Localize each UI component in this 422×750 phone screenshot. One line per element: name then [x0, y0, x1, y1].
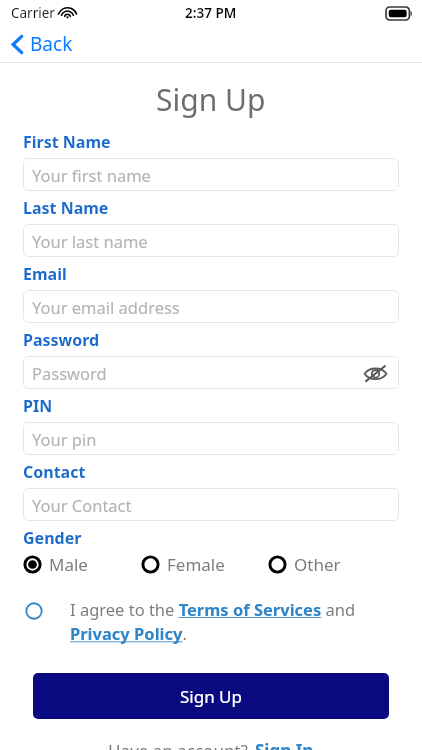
button[interactable]: Password: [23, 356, 399, 389]
staticText: Male: [49, 553, 88, 576]
staticText: Your Contact: [32, 494, 132, 516]
staticText: Your pin: [32, 428, 97, 450]
button[interactable]: Your first name: [23, 158, 399, 191]
staticText: Sign Up: [156, 79, 266, 120]
staticText: 2:37 PM: [185, 4, 237, 22]
staticText: I agree to the Terms of Services and Pri…: [70, 598, 382, 645]
staticText: Email: [23, 263, 67, 285]
staticText: Other: [294, 553, 341, 576]
staticText: Password: [32, 362, 107, 384]
button[interactable]: Agree to terms: [25, 598, 382, 645]
staticText: First Name: [23, 131, 111, 153]
button[interactable]: Your pin: [23, 422, 399, 455]
button[interactable]: Your last name: [23, 224, 399, 257]
staticText: Have an account?: [108, 739, 248, 750]
staticText: Your email address: [32, 296, 180, 318]
staticText: Sign Up: [180, 685, 242, 708]
button[interactable]: Show password: [362, 363, 388, 383]
staticText: PIN: [23, 395, 53, 417]
button[interactable]: Your email address: [23, 290, 399, 323]
button[interactable]: Your Contact: [23, 488, 399, 521]
staticText: Contact: [23, 461, 86, 483]
button[interactable]: Other: [268, 553, 341, 576]
button[interactable]: Male: [23, 553, 88, 576]
button[interactable]: Sign Up: [33, 673, 389, 719]
button[interactable]: Back: [0, 26, 422, 62]
staticText: Your first name: [32, 164, 151, 186]
button[interactable]: Female: [141, 553, 225, 576]
staticText: Back: [30, 31, 73, 57]
staticText: Your last name: [32, 230, 148, 252]
staticText: Carrier: [11, 4, 55, 22]
staticText: Last Name: [23, 197, 109, 219]
staticText: Sign In: [255, 739, 314, 750]
staticText: Gender: [23, 527, 82, 549]
staticText: Password: [23, 329, 100, 351]
staticText: Female: [167, 553, 225, 576]
button[interactable]: Sign In: [255, 739, 314, 750]
other: Agree to terms: [25, 602, 43, 620]
